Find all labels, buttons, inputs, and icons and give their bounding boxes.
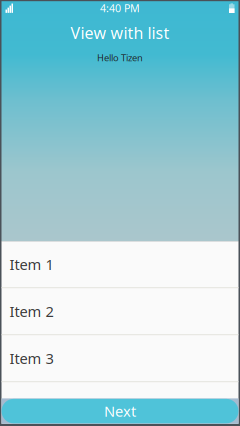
button[interactable]: Item 2: [1, 288, 238, 334]
staticText: Item 3: [9, 348, 53, 368]
button[interactable]: Item 3: [1, 335, 238, 381]
button[interactable]: Item 1: [1, 241, 238, 287]
staticText: 4:40 PM: [100, 1, 140, 15]
button[interactable]: Next: [1, 398, 238, 424]
staticText: Item 2: [9, 301, 53, 321]
staticText: Next: [104, 401, 136, 421]
staticText: Item 1: [9, 254, 53, 274]
staticText: Hello Tizen: [97, 51, 143, 64]
staticText: View with list: [70, 22, 169, 43]
